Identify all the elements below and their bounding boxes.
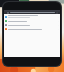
button[interactable]: Menu [6, 11, 9, 14]
button[interactable]: Open [4, 23, 60, 27]
button[interactable]: Open [4, 27, 60, 31]
button[interactable]: Open [4, 19, 60, 23]
button[interactable]: Menu [4, 10, 60, 14]
button[interactable]: Open [4, 14, 60, 19]
